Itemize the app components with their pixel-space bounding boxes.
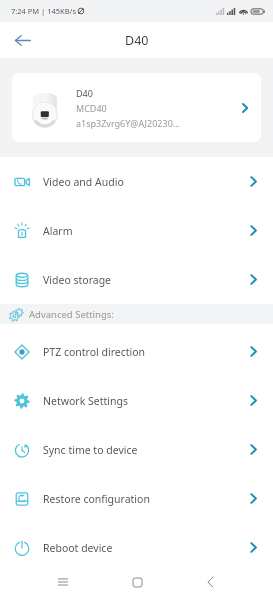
button[interactable]: Video and Audio [0,157,273,206]
staticText: Alarm [43,224,73,238]
button[interactable]: Video storage [0,255,273,304]
button[interactable]: Reboot device [0,523,273,572]
button[interactable]: Alarm [0,206,273,255]
button[interactable]: D40 [12,73,261,142]
staticText: Restore configuration [43,492,150,506]
staticText: Video and Audio [43,175,124,189]
staticText: a1sp3Zvrg6Y@AJ20230… [76,117,180,129]
button[interactable]: Home [122,572,152,592]
button[interactable]: Restore configuration [0,474,273,523]
staticText: D40 [125,32,149,49]
button[interactable]: Sync time to device [0,425,273,474]
staticText: Advanced Settings: [29,308,114,321]
staticText: Reboot device [43,541,113,555]
staticText: D40 [76,87,93,99]
staticText: Sync time to device [43,443,138,457]
staticText: 7:24 PM | 145KB/s [11,6,76,16]
button[interactable]: Back [6,24,38,56]
button[interactable]: Network Settings [0,376,273,425]
staticText: MCD40 [76,102,107,114]
button[interactable]: Recent apps [48,572,78,592]
button[interactable]: Back [195,572,225,592]
staticText: PTZ control direction [43,345,146,359]
staticText: Video storage [43,273,112,287]
button[interactable]: PTZ control direction [0,327,273,376]
staticText: Network Settings [43,394,128,408]
